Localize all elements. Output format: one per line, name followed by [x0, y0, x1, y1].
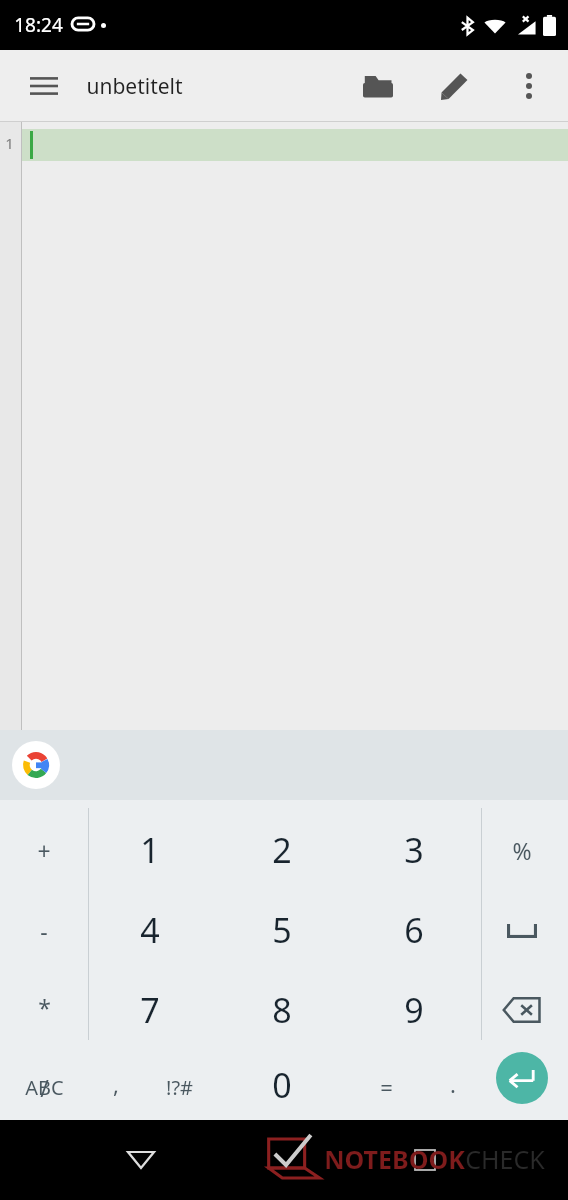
button[interactable]: . — [407, 1048, 499, 1120]
staticText: = — [380, 1072, 393, 1102]
button[interactable]: Back — [113, 1132, 169, 1188]
button[interactable]: = — [340, 1051, 432, 1123]
staticText: 0 — [272, 1062, 292, 1108]
button[interactable]: % — [476, 814, 568, 886]
button[interactable]: Open file — [354, 62, 402, 110]
staticText: 1 — [140, 827, 160, 873]
staticText: % — [512, 835, 532, 866]
button[interactable]: 8 — [236, 974, 328, 1046]
staticText: 18:24 — [14, 12, 63, 38]
button[interactable]: 7 — [104, 974, 196, 1046]
staticText: 8 — [272, 987, 292, 1033]
button[interactable]: Backspace — [478, 976, 566, 1044]
staticText: 9 — [404, 987, 424, 1033]
staticText: !?# — [166, 1074, 193, 1101]
button[interactable]: ABC — [0, 1051, 90, 1123]
staticText: NOTEBOOK — [324, 1142, 465, 1176]
button[interactable]: 0 — [236, 1049, 328, 1121]
button[interactable]: More options — [505, 62, 553, 110]
button[interactable]: Home — [397, 1132, 453, 1188]
button[interactable]: * — [0, 971, 90, 1043]
staticText: 7 — [140, 987, 160, 1033]
button[interactable]: 4 — [104, 894, 196, 966]
button[interactable]: !?# — [133, 1051, 225, 1123]
staticText: + — [37, 835, 51, 866]
staticText: / — [40, 1072, 49, 1103]
button[interactable]: / — [0, 1051, 90, 1123]
staticText: 6 — [404, 907, 424, 953]
staticText: . — [450, 1069, 456, 1099]
staticText: 1 — [5, 133, 14, 153]
button[interactable]: Google search — [0, 730, 568, 800]
button[interactable]: Edit — [430, 62, 478, 110]
staticText: unbetitelt — [86, 72, 183, 101]
button[interactable]: + — [0, 814, 90, 886]
button[interactable]: 5 — [236, 894, 328, 966]
button[interactable]: - — [0, 894, 90, 966]
button[interactable]: Space — [478, 897, 566, 965]
staticText: * — [38, 992, 51, 1023]
button[interactable]: 2 — [236, 814, 328, 886]
staticText: 5 — [272, 907, 292, 953]
button[interactable]: 3 — [368, 814, 460, 886]
button[interactable]: 1 — [104, 814, 196, 886]
staticText: ABC — [25, 1074, 64, 1101]
staticText: - — [40, 915, 48, 946]
button[interactable]: , — [70, 1048, 162, 1120]
staticText: 2 — [272, 827, 292, 873]
staticText: , — [113, 1069, 119, 1099]
staticText: 4 — [140, 907, 160, 953]
button[interactable]: 6 — [368, 894, 460, 966]
button[interactable]: 9 — [368, 974, 460, 1046]
staticText: CHECK — [465, 1142, 545, 1176]
staticText: 3 — [404, 827, 424, 873]
button[interactable]: Navigation menu — [20, 62, 68, 110]
button[interactable]: Enter — [496, 1052, 548, 1104]
